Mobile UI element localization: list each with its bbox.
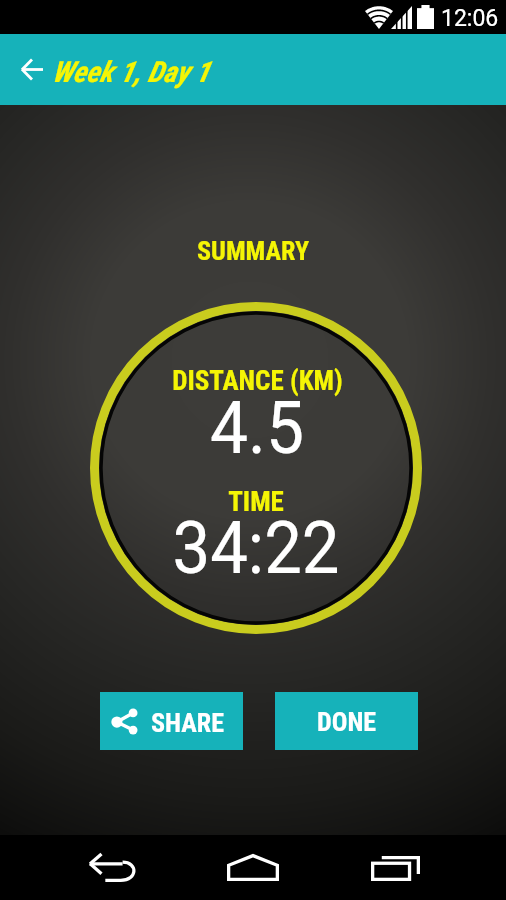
staticText: TIME	[228, 486, 284, 518]
staticText: 34:22	[172, 506, 340, 590]
button[interactable]: DONE	[275, 692, 418, 750]
staticText: SUMMARY	[197, 236, 309, 266]
button[interactable]: Home	[190, 835, 316, 900]
staticText: Week 1, Day 1	[52, 55, 210, 89]
staticText: SHARE	[151, 708, 224, 738]
staticText: DISTANCE (KM)	[172, 365, 343, 397]
staticText: DONE	[317, 707, 377, 737]
button[interactable]: Back	[20, 835, 190, 900]
button[interactable]: Recent apps	[316, 835, 506, 900]
staticText: 4.5	[210, 386, 304, 470]
button[interactable]: SHARE	[100, 692, 243, 750]
staticText: 12:06	[441, 5, 499, 32]
button[interactable]: Back	[0, 34, 64, 105]
